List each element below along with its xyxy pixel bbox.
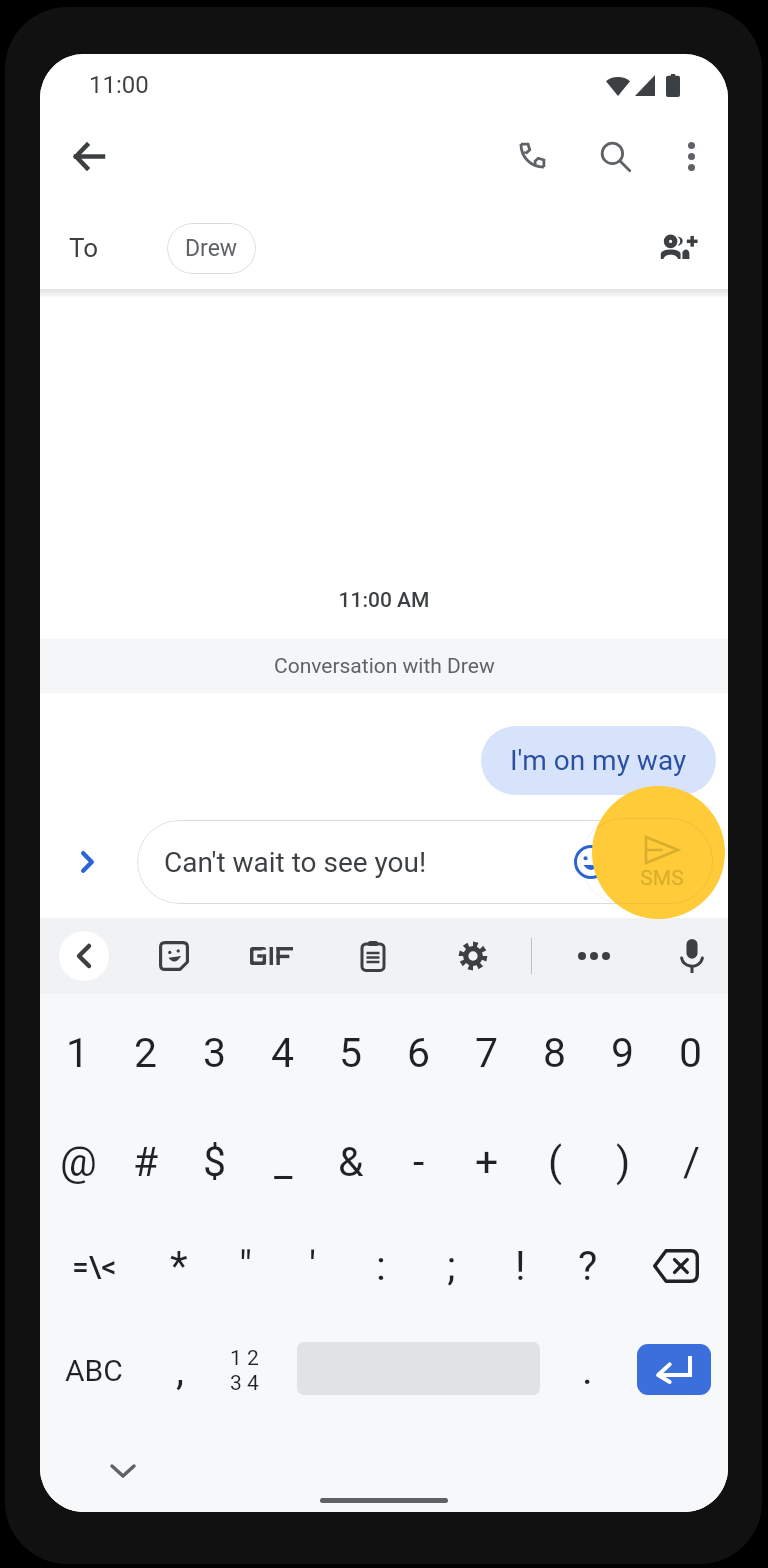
- button[interactable]: $: [171, 1126, 259, 1198]
- button[interactable]: Send SMS: [628, 820, 728, 904]
- button[interactable]: Voice input: [668, 932, 716, 980]
- staticText: =\<: [72, 1249, 117, 1284]
- staticText: SMS: [634, 866, 690, 891]
- button[interactable]: &: [307, 1126, 395, 1198]
- button[interactable]: ;: [407, 1230, 495, 1302]
- staticText: /: [683, 1138, 700, 1186]
- button[interactable]: Can't wait to see you!: [137, 820, 713, 904]
- button[interactable]: Enter: [637, 1344, 711, 1395]
- staticText: ': [309, 1242, 317, 1290]
- button[interactable]: #: [102, 1126, 190, 1198]
- staticText: &: [338, 1138, 364, 1186]
- staticText: !: [515, 1242, 526, 1290]
- staticText: ;: [447, 1242, 456, 1290]
- button[interactable]: Settings: [449, 932, 497, 980]
- staticText: To: [69, 233, 99, 263]
- button[interactable]: Expand: [65, 840, 109, 884]
- button[interactable]: 7: [443, 1017, 531, 1089]
- button[interactable]: :: [337, 1230, 425, 1302]
- staticText: Conversation with Drew: [274, 654, 495, 679]
- button[interactable]: /: [647, 1126, 728, 1198]
- staticText: ,: [176, 1346, 185, 1394]
- button[interactable]: Emoji: [571, 842, 611, 882]
- staticText: (: [548, 1138, 563, 1186]
- staticText: :: [376, 1242, 386, 1290]
- staticText: _: [274, 1138, 293, 1186]
- button[interactable]: Add people: [651, 219, 709, 277]
- button[interactable]: 9: [579, 1017, 667, 1089]
- staticText: 3 4: [230, 1371, 259, 1394]
- button[interactable]: Call: [506, 130, 558, 182]
- staticText: ): [616, 1138, 631, 1186]
- button[interactable]: (: [511, 1126, 599, 1198]
- staticText: +: [475, 1138, 499, 1186]
- staticText: ?: [578, 1242, 598, 1290]
- button[interactable]: 1: [40, 1017, 122, 1089]
- button[interactable]: GIF: [247, 932, 295, 980]
- staticText: SMS: [634, 867, 690, 892]
- staticText: I'm on my way: [510, 744, 687, 777]
- button[interactable]: ': [269, 1230, 357, 1302]
- button[interactable]: @: [40, 1126, 122, 1198]
- staticText: 5: [339, 1029, 363, 1077]
- button[interactable]: 1 2: [220, 1346, 268, 1394]
- button[interactable]: Stickers: [150, 932, 198, 980]
- button[interactable]: ?: [544, 1230, 632, 1302]
- button[interactable]: =\<: [50, 1230, 138, 1302]
- button[interactable]: Search: [589, 130, 641, 182]
- button[interactable]: More: [570, 932, 618, 980]
- staticText: 2: [134, 1029, 158, 1077]
- button[interactable]: +: [443, 1126, 531, 1198]
- button[interactable]: Backspace: [649, 1242, 702, 1290]
- button[interactable]: 8: [511, 1017, 599, 1089]
- button[interactable]: _: [239, 1126, 327, 1198]
- staticText: ": [239, 1242, 253, 1290]
- staticText: Drew: [185, 235, 238, 262]
- staticText: 1: [66, 1029, 90, 1077]
- button[interactable]: Hide keyboard: [99, 1447, 147, 1495]
- button[interactable]: Back: [59, 931, 109, 981]
- staticText: ABC: [65, 1353, 123, 1388]
- button[interactable]: ": [202, 1230, 290, 1302]
- staticText: 3: [203, 1029, 227, 1077]
- button[interactable]: I'm on my way: [481, 726, 716, 795]
- staticText: 6: [407, 1029, 431, 1077]
- staticText: @: [60, 1138, 97, 1186]
- staticText: *: [170, 1242, 188, 1290]
- button[interactable]: 4: [239, 1017, 327, 1089]
- button[interactable]: 3: [171, 1017, 259, 1089]
- button[interactable]: More options: [665, 130, 717, 182]
- staticText: $: [203, 1138, 227, 1186]
- staticText: 11:00 AM: [40, 588, 728, 613]
- button[interactable]: -: [375, 1126, 463, 1198]
- staticText: 0: [679, 1029, 703, 1077]
- button[interactable]: .: [543, 1334, 631, 1406]
- staticText: Can't wait to see you!: [164, 846, 427, 879]
- button[interactable]: Clipboard: [349, 932, 397, 980]
- staticText: .: [582, 1346, 593, 1394]
- button[interactable]: Back: [61, 129, 115, 183]
- button[interactable]: ): [579, 1126, 667, 1198]
- button[interactable]: Drew: [167, 223, 256, 274]
- button[interactable]: ,: [136, 1334, 224, 1406]
- button[interactable]: *: [135, 1230, 223, 1302]
- staticText: -: [413, 1138, 425, 1186]
- button[interactable]: ABC: [50, 1334, 138, 1406]
- staticText: 11:00: [89, 71, 149, 99]
- staticText: 1 2: [230, 1346, 259, 1371]
- button[interactable]: !: [476, 1230, 564, 1302]
- staticText: 4: [271, 1029, 295, 1077]
- staticText: 8: [543, 1029, 567, 1077]
- staticText: #: [133, 1138, 159, 1186]
- button[interactable]: 5: [307, 1017, 395, 1089]
- staticText: 7: [475, 1029, 499, 1077]
- button[interactable]: 2: [102, 1017, 190, 1089]
- staticText: 9: [611, 1029, 635, 1077]
- button[interactable]: 6: [375, 1017, 463, 1089]
- button[interactable]: 0: [647, 1017, 728, 1089]
